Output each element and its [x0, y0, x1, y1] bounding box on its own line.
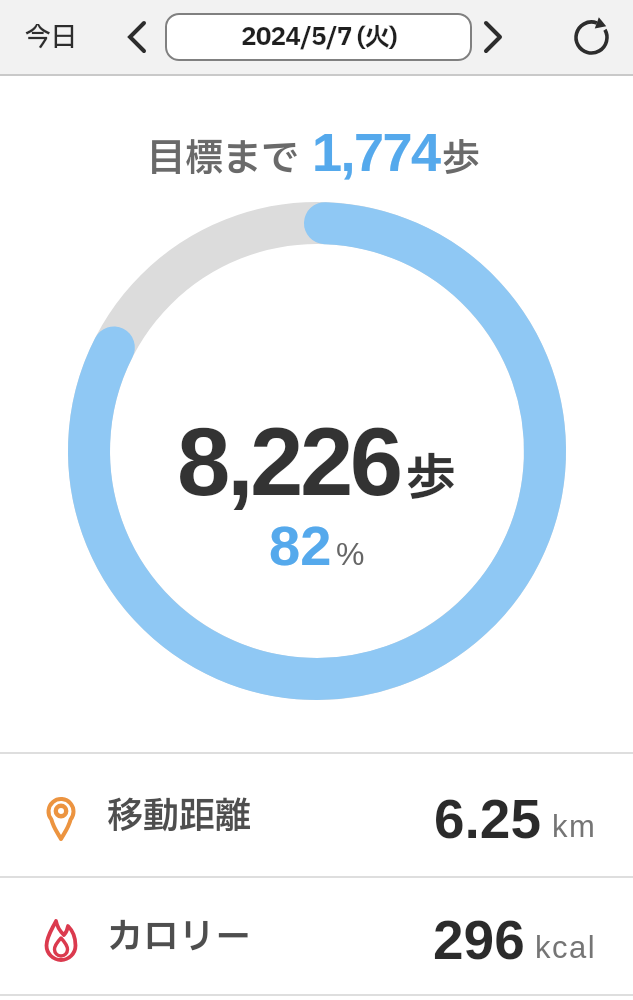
button[interactable] [128, 21, 146, 53]
staticText: % [336, 536, 365, 572]
button[interactable]: 2024/5/7 (火) [165, 13, 472, 61]
staticText: 82 [269, 514, 332, 577]
button[interactable]: 移動距離 [0, 754, 633, 876]
button[interactable] [573, 19, 610, 56]
button[interactable]: カロリー [0, 878, 633, 994]
button[interactable] [484, 21, 502, 53]
staticText: カロリー [107, 911, 252, 965]
staticText: 歩 [442, 131, 481, 188]
staticText: 1,774 [312, 122, 440, 182]
staticText: kcal [535, 930, 597, 965]
staticText: 歩 [406, 442, 456, 517]
staticText: 移動距離 [107, 790, 252, 844]
staticText: 8,226 [177, 408, 400, 515]
staticText: km [552, 809, 597, 844]
staticText: 目標まで [147, 131, 300, 188]
staticText: 2024/5/7 (火) [241, 19, 397, 56]
staticText: 6.25 [434, 788, 542, 849]
button[interactable]: 今日 [25, 18, 78, 57]
staticText: 296 [433, 909, 525, 970]
